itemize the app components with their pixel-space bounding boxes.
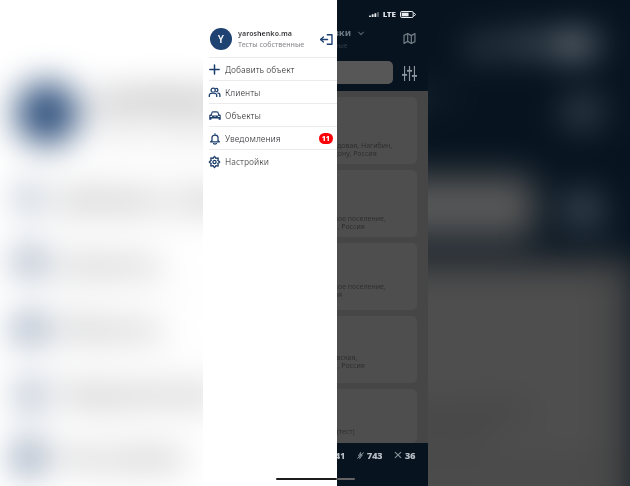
- button[interactable]: Объекты: [13, 295, 365, 357]
- staticText: Добавить объект: [58, 183, 257, 214]
- staticText: Тесты собственные: [238, 39, 305, 49]
- button[interactable]: Заявка от 12.04.2023 17:25 №4481 (тест): [211, 389, 417, 443]
- staticText: Y: [218, 32, 224, 46]
- staticText: 743: [367, 449, 383, 461]
- button[interactable]: Настройки: [13, 424, 365, 486]
- other: Map: [403, 32, 416, 45]
- button[interactable]: Ростовская обл, Багаевское сельское посе…: [211, 170, 417, 237]
- staticText: Собственные тесты собственные: [98, 119, 408, 144]
- button[interactable]: Добавить объект: [13, 166, 365, 228]
- staticText: Клиенты: [225, 87, 261, 98]
- staticText: 11: [334, 379, 360, 407]
- button[interactable]: Уведомления: [13, 360, 365, 421]
- staticText: Ростовские тестовые заявки: [19, 77, 419, 113]
- button[interactable]: Россия, Ростовская область, ул. Садовая,…: [211, 97, 417, 164]
- staticText: Ростовская обл, Багаевское сельское посе…: [220, 282, 386, 299]
- staticText: Добавить объект: [225, 64, 295, 75]
- staticText: LTE: [383, 9, 396, 19]
- other: Log out: [320, 33, 333, 46]
- staticText: 41: [335, 449, 346, 461]
- staticText: Настройки: [225, 156, 269, 167]
- button[interactable]: Y: [210, 21, 336, 57]
- button[interactable]: [213, 61, 393, 84]
- staticText: Уведомления: [58, 376, 217, 407]
- staticText: Россия, Ростовская область, ул. Садовая,…: [220, 141, 393, 158]
- button[interactable]: Россия, Ростовская область, ул. Садовая,…: [19, 276, 604, 463]
- staticText: LTE: [507, 29, 544, 57]
- staticText: Собственные тесты собственные: [239, 41, 348, 50]
- staticText: yaroshenko.ma: [238, 29, 293, 39]
- staticText: Объекты: [225, 110, 261, 121]
- staticText: Уведомления: [225, 133, 281, 144]
- staticText: Ростовская обл, Багаевская, Багаевская, …: [220, 353, 365, 370]
- other: Filters: [402, 66, 417, 81]
- staticText: Y: [39, 94, 56, 133]
- button[interactable]: Уведомления: [209, 127, 333, 149]
- staticText: Ростовские тестовые заявки: [211, 26, 352, 39]
- staticText: Ростовская обл, Багаевское сельское посе…: [220, 214, 386, 231]
- button[interactable]: Ростовская обл, Багаевское сельское посе…: [211, 243, 417, 310]
- other: Log out: [328, 96, 365, 133]
- button[interactable]: Клиенты: [13, 231, 365, 292]
- staticText: yaroshenko.ma: [95, 85, 252, 113]
- staticText: Заявка от 12.04.2023 17:25 №4481 (тест): [220, 427, 355, 437]
- staticText: 11: [322, 134, 331, 144]
- staticText: Объекты: [58, 312, 161, 343]
- button[interactable]: Ростовская обл, Багаевская, Багаевская, …: [211, 316, 417, 383]
- button[interactable]: [24, 175, 536, 239]
- button[interactable]: Ростовская обл, Багаевское сельское посе…: [19, 480, 604, 486]
- staticText: Тесты собственные: [95, 113, 286, 141]
- button[interactable]: Настройки: [209, 150, 333, 172]
- button[interactable]: Клиенты: [209, 81, 333, 103]
- staticText: Россия, Ростовская область, ул. Садовая,…: [44, 399, 536, 446]
- other: Filters: [561, 189, 604, 231]
- button[interactable]: Добавить объект: [209, 58, 333, 80]
- button[interactable]: Y: [16, 63, 374, 164]
- staticText: 36: [405, 449, 416, 461]
- button[interactable]: Объекты: [209, 104, 333, 126]
- staticText: Клиенты: [58, 248, 161, 278]
